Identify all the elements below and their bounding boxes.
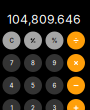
staticText: % (51, 37, 57, 44)
button[interactable]: 4 (2, 76, 20, 94)
staticText: 8 (31, 59, 35, 67)
button[interactable]: C (2, 31, 20, 49)
button[interactable]: Minus (67, 76, 85, 94)
staticText: 3 (52, 104, 56, 110)
staticText: C (9, 37, 13, 44)
button[interactable]: 7 (2, 54, 20, 72)
button[interactable]: 2 (24, 99, 42, 110)
button[interactable]: 5 (24, 76, 42, 94)
staticText: 1 (10, 104, 12, 110)
button[interactable]: 9 (45, 54, 63, 72)
button[interactable]: 3 (45, 99, 63, 110)
button[interactable]: Divide (67, 31, 85, 49)
staticText: 4 (9, 82, 13, 89)
button[interactable]: Plus (67, 99, 85, 110)
button[interactable]: Toggle sign (24, 31, 42, 49)
button[interactable]: % (45, 31, 63, 49)
button[interactable]: Multiply (67, 54, 85, 72)
staticText: 9 (52, 59, 56, 67)
staticText: 2 (31, 104, 35, 110)
staticText: 7 (10, 59, 13, 67)
button[interactable]: 1 (2, 99, 20, 110)
staticText: 104,809.646 (7, 12, 81, 27)
staticText: 5 (31, 82, 35, 89)
staticText: 6 (52, 82, 56, 89)
button[interactable]: 6 (45, 76, 63, 94)
button[interactable]: 8 (24, 54, 42, 72)
